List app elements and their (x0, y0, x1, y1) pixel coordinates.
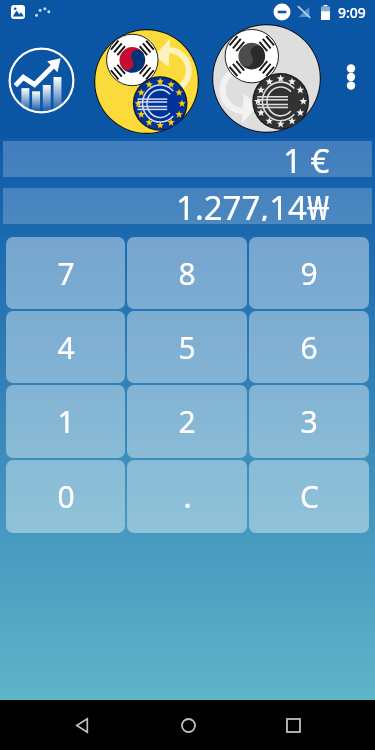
staticText: 5 (178, 327, 196, 368)
button[interactable]: 2 (127, 385, 247, 458)
button[interactable]: 1 (6, 385, 125, 458)
button[interactable]: 0 (6, 460, 125, 533)
button[interactable]: 8 (127, 237, 247, 309)
button[interactable]: More options (331, 57, 371, 97)
staticText: 7 (57, 253, 75, 294)
button[interactable]: 7 (6, 237, 125, 309)
button[interactable]: Recent apps (269, 701, 317, 749)
button[interactable]: . (127, 460, 247, 533)
staticText: 1 (57, 401, 75, 442)
staticText: 1.277,14₩ (176, 185, 330, 221)
staticText: 0 (57, 476, 75, 517)
button[interactable]: Exchange rate chart (8, 47, 75, 114)
button[interactable]: 1 € (3, 141, 372, 177)
staticText: 6 (300, 327, 318, 368)
button[interactable]: 4 (6, 311, 125, 383)
staticText: 4 (57, 327, 75, 368)
staticText: 1 € (283, 138, 330, 174)
button[interactable]: 6 (249, 311, 369, 383)
button[interactable]: Swap currencies (94, 29, 199, 134)
button[interactable]: Reverse currencies (212, 24, 321, 133)
staticText: 9 (300, 253, 318, 294)
staticText: . (183, 476, 192, 517)
button[interactable]: 3 (249, 385, 369, 458)
button[interactable]: 1.277,14₩ (3, 188, 372, 224)
staticText: 2 (178, 401, 196, 442)
staticText: 9:09 (338, 3, 366, 22)
staticText: 8 (178, 253, 196, 294)
staticText: 3 (300, 401, 318, 442)
button[interactable]: 9 (249, 237, 369, 309)
staticText: C (300, 476, 319, 517)
button[interactable]: Home (164, 701, 212, 749)
button[interactable]: 5 (127, 311, 247, 383)
button[interactable]: C (249, 460, 369, 533)
button[interactable]: Back (58, 701, 106, 749)
